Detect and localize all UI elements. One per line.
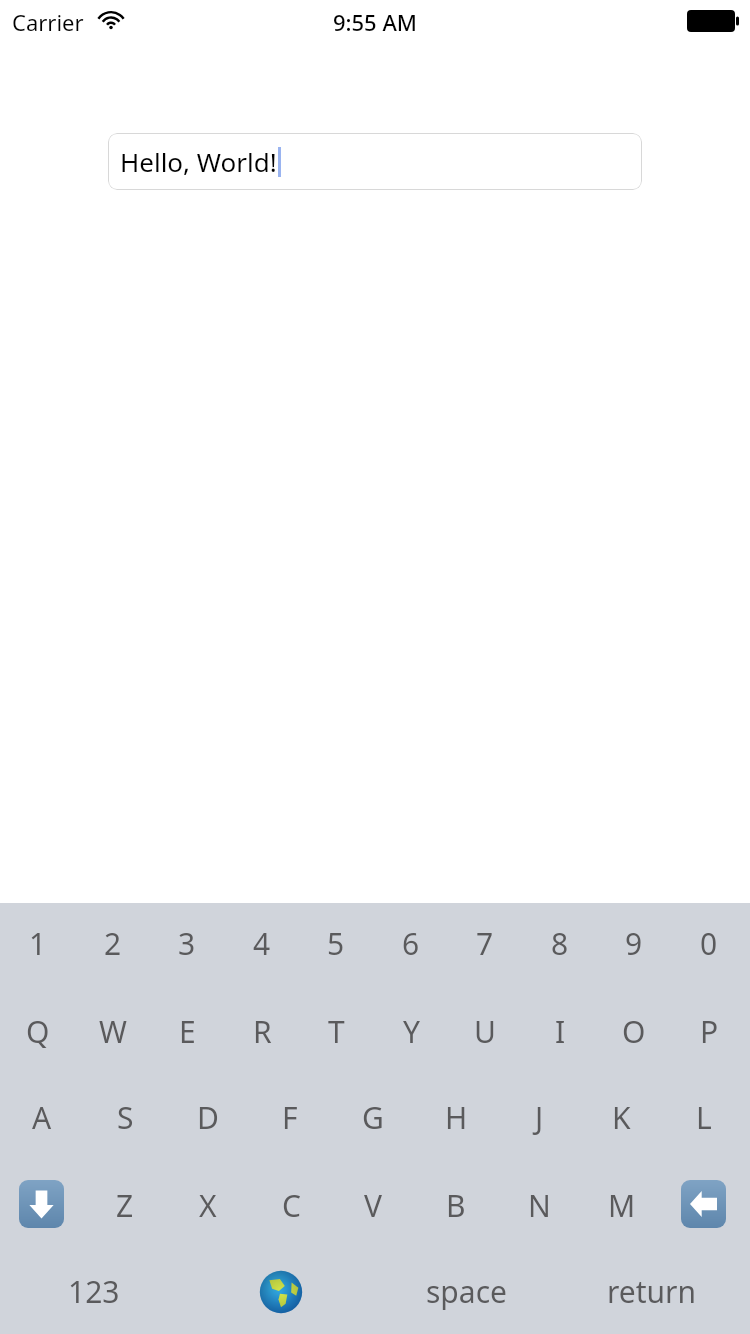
button[interactable]: F — [257, 1087, 323, 1147]
button[interactable]: B — [423, 1175, 489, 1235]
staticText: Z — [116, 1185, 134, 1226]
staticText: H — [445, 1097, 468, 1138]
button[interactable]: 2 — [80, 913, 146, 973]
staticText: 7 — [476, 923, 494, 964]
button[interactable]: L — [671, 1087, 737, 1147]
button[interactable]: S — [92, 1087, 158, 1147]
button[interactable]: K — [588, 1087, 654, 1147]
staticText: 4 — [253, 923, 271, 964]
button[interactable]: 7 — [452, 913, 518, 973]
staticText: 8 — [551, 923, 569, 964]
button[interactable]: 6 — [378, 913, 444, 973]
staticText: B — [446, 1185, 466, 1226]
button[interactable]: Z — [92, 1175, 158, 1235]
staticText: 1 — [29, 923, 47, 964]
button[interactable]: G — [340, 1087, 406, 1147]
staticText: space — [426, 1271, 507, 1312]
button[interactable]: 5 — [303, 913, 369, 973]
button[interactable]: Backspace — [681, 1180, 726, 1228]
button[interactable]: C — [258, 1175, 324, 1235]
staticText: A — [32, 1097, 52, 1138]
staticText: C — [282, 1185, 301, 1226]
staticText: V — [364, 1185, 382, 1226]
button[interactable]: P — [676, 1001, 742, 1061]
staticText: Y — [403, 1011, 420, 1052]
staticText: 2 — [104, 923, 122, 964]
staticText: 9:55 AM — [0, 7, 750, 37]
staticText: W — [99, 1011, 127, 1052]
staticText: X — [199, 1185, 217, 1226]
staticText: 6 — [402, 923, 420, 964]
button[interactable]: 9 — [601, 913, 667, 973]
staticText: E — [179, 1011, 196, 1052]
button[interactable]: W — [80, 1001, 146, 1061]
button[interactable]: Y — [378, 1001, 444, 1061]
button[interactable]: return — [587, 1261, 717, 1321]
button[interactable]: V — [340, 1175, 406, 1235]
button[interactable]: 123 — [29, 1261, 159, 1321]
button[interactable]: X — [175, 1175, 241, 1235]
staticText: U — [474, 1011, 496, 1052]
staticText: 0 — [700, 923, 718, 964]
button[interactable]: Hello, World! — [108, 133, 642, 190]
staticText: I — [555, 1011, 566, 1052]
button[interactable]: space — [401, 1261, 531, 1321]
button[interactable]: 8 — [527, 913, 593, 973]
button[interactable]: E — [154, 1001, 220, 1061]
button[interactable]: 0 — [676, 913, 742, 973]
button[interactable]: J — [506, 1087, 572, 1147]
button[interactable]: U — [452, 1001, 518, 1061]
button[interactable]: 4 — [229, 913, 295, 973]
staticText: N — [528, 1185, 551, 1226]
staticText: L — [696, 1097, 712, 1138]
staticText: 3 — [178, 923, 196, 964]
staticText: Q — [26, 1011, 50, 1052]
button[interactable]: Change keyboard language — [258, 1267, 304, 1317]
button[interactable]: D — [175, 1087, 241, 1147]
button[interactable]: H — [423, 1087, 489, 1147]
button[interactable]: 1 — [5, 913, 71, 973]
staticText: T — [328, 1011, 345, 1052]
staticText: return — [607, 1271, 697, 1312]
staticText: G — [362, 1097, 384, 1138]
button[interactable]: O — [601, 1001, 667, 1061]
staticText: 9 — [625, 923, 643, 964]
staticText: Hello, World! — [120, 144, 277, 179]
staticText: P — [700, 1011, 719, 1052]
staticText: K — [612, 1097, 631, 1138]
staticText: 123 — [68, 1271, 120, 1312]
button[interactable]: I — [527, 1001, 593, 1061]
staticText: O — [622, 1011, 646, 1052]
button[interactable]: R — [229, 1001, 295, 1061]
staticText: 5 — [327, 923, 345, 964]
button[interactable]: M — [589, 1175, 655, 1235]
button[interactable]: Q — [5, 1001, 71, 1061]
staticText: J — [535, 1097, 544, 1138]
staticText: S — [117, 1097, 134, 1138]
staticText: F — [282, 1097, 298, 1138]
button[interactable]: T — [303, 1001, 369, 1061]
staticText: Carrier — [12, 7, 84, 37]
staticText: D — [197, 1097, 219, 1138]
button[interactable]: A — [9, 1087, 75, 1147]
button[interactable]: Shift — [19, 1180, 64, 1228]
button[interactable]: N — [506, 1175, 572, 1235]
staticText: M — [608, 1185, 636, 1226]
button[interactable]: 3 — [154, 913, 220, 973]
staticText: R — [253, 1011, 272, 1052]
